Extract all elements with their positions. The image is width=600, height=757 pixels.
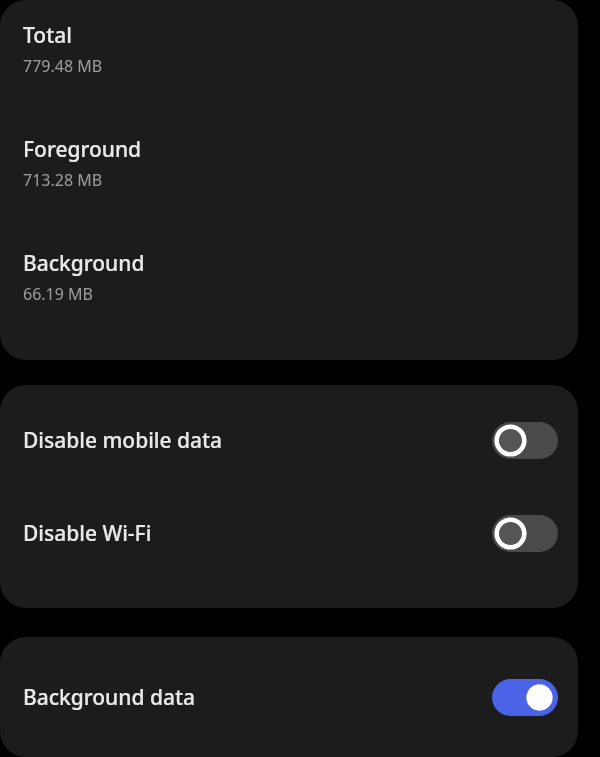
staticText: 779.48 MB xyxy=(23,55,103,77)
staticText: 713.28 MB xyxy=(23,169,103,191)
button[interactable]: Disable Wi-Fi xyxy=(492,515,558,552)
staticText: 66.19 MB xyxy=(23,283,93,305)
button[interactable]: Disable mobile data xyxy=(492,422,558,459)
staticText: Disable Wi-Fi xyxy=(23,519,492,548)
button[interactable]: Disable mobile data xyxy=(23,413,558,468)
staticText: Background xyxy=(23,249,145,278)
staticText: Foreground xyxy=(23,135,142,164)
button[interactable]: Background data xyxy=(23,670,558,725)
button[interactable]: Background data xyxy=(492,679,558,716)
staticText: Total xyxy=(23,21,72,50)
button[interactable]: Disable Wi-Fi xyxy=(23,506,558,561)
staticText: Background data xyxy=(23,683,492,712)
staticText: Disable mobile data xyxy=(23,426,492,455)
